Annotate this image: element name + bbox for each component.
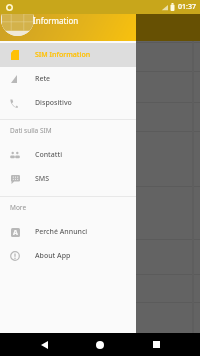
button[interactable]: A (0, 220, 136, 244)
button[interactable]: Back (32, 333, 56, 356)
staticText: SIM Information (35, 50, 91, 60)
staticText: More (10, 203, 27, 212)
staticText: Dispositivo (35, 98, 72, 108)
staticText: Contatti (35, 150, 63, 160)
staticText: About App (35, 251, 71, 261)
staticText: 01:37 (178, 2, 196, 12)
button[interactable]: Dispositivo (0, 91, 136, 115)
button[interactable]: About App (0, 244, 136, 268)
button[interactable]: Rete (0, 67, 136, 91)
button[interactable]: SMS (0, 167, 136, 191)
button[interactable]: Contatti (0, 143, 136, 167)
button[interactable]: SIM Information (0, 43, 136, 67)
staticText: Information (33, 15, 79, 26)
button[interactable]: Home (88, 333, 112, 356)
staticText: Rete (35, 74, 51, 84)
button[interactable]: Recent apps (144, 333, 168, 356)
staticText: Dati sulla SIM (10, 126, 52, 135)
staticText: A (13, 228, 18, 237)
staticText: SMS (35, 174, 50, 184)
staticText: Perché Annunci (35, 227, 88, 237)
